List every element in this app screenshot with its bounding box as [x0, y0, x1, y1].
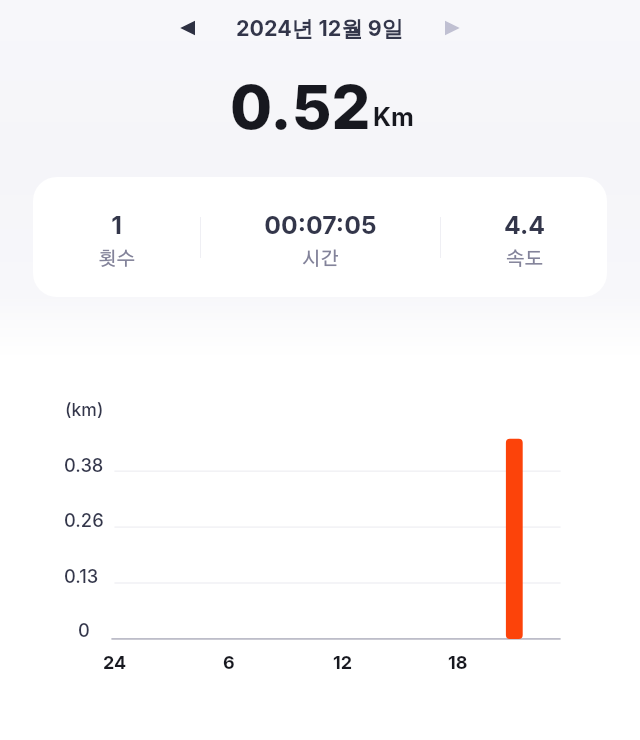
staticText: 12: [333, 652, 353, 674]
button[interactable]: Next day: [430, 7, 472, 49]
staticText: Km: [373, 102, 414, 132]
staticText: 00:07:05: [264, 210, 377, 240]
staticText: 4.4: [504, 210, 545, 240]
staticText: 24: [103, 652, 127, 674]
staticText: 2024년 12월 9일: [236, 15, 404, 42]
staticText: 0: [78, 619, 90, 641]
button[interactable]: 2024년 12월 9일: [236, 15, 404, 42]
button[interactable]: 4.4: [441, 177, 607, 297]
staticText: 횟수: [98, 250, 135, 269]
staticText: 0.52: [230, 70, 371, 144]
button[interactable]: 00:07:05: [201, 177, 440, 297]
button[interactable]: 1: [33, 177, 200, 297]
staticText: 0.38: [64, 454, 104, 476]
staticText: 0.26: [64, 509, 104, 531]
button[interactable]: Previous day: [168, 7, 210, 49]
staticText: 속도: [506, 250, 543, 269]
staticText: (km): [65, 399, 104, 420]
staticText: 시간: [302, 250, 339, 269]
staticText: 1: [111, 210, 122, 240]
staticText: 6: [223, 652, 235, 674]
staticText: 18: [448, 652, 468, 674]
staticText: 0.13: [64, 565, 99, 587]
